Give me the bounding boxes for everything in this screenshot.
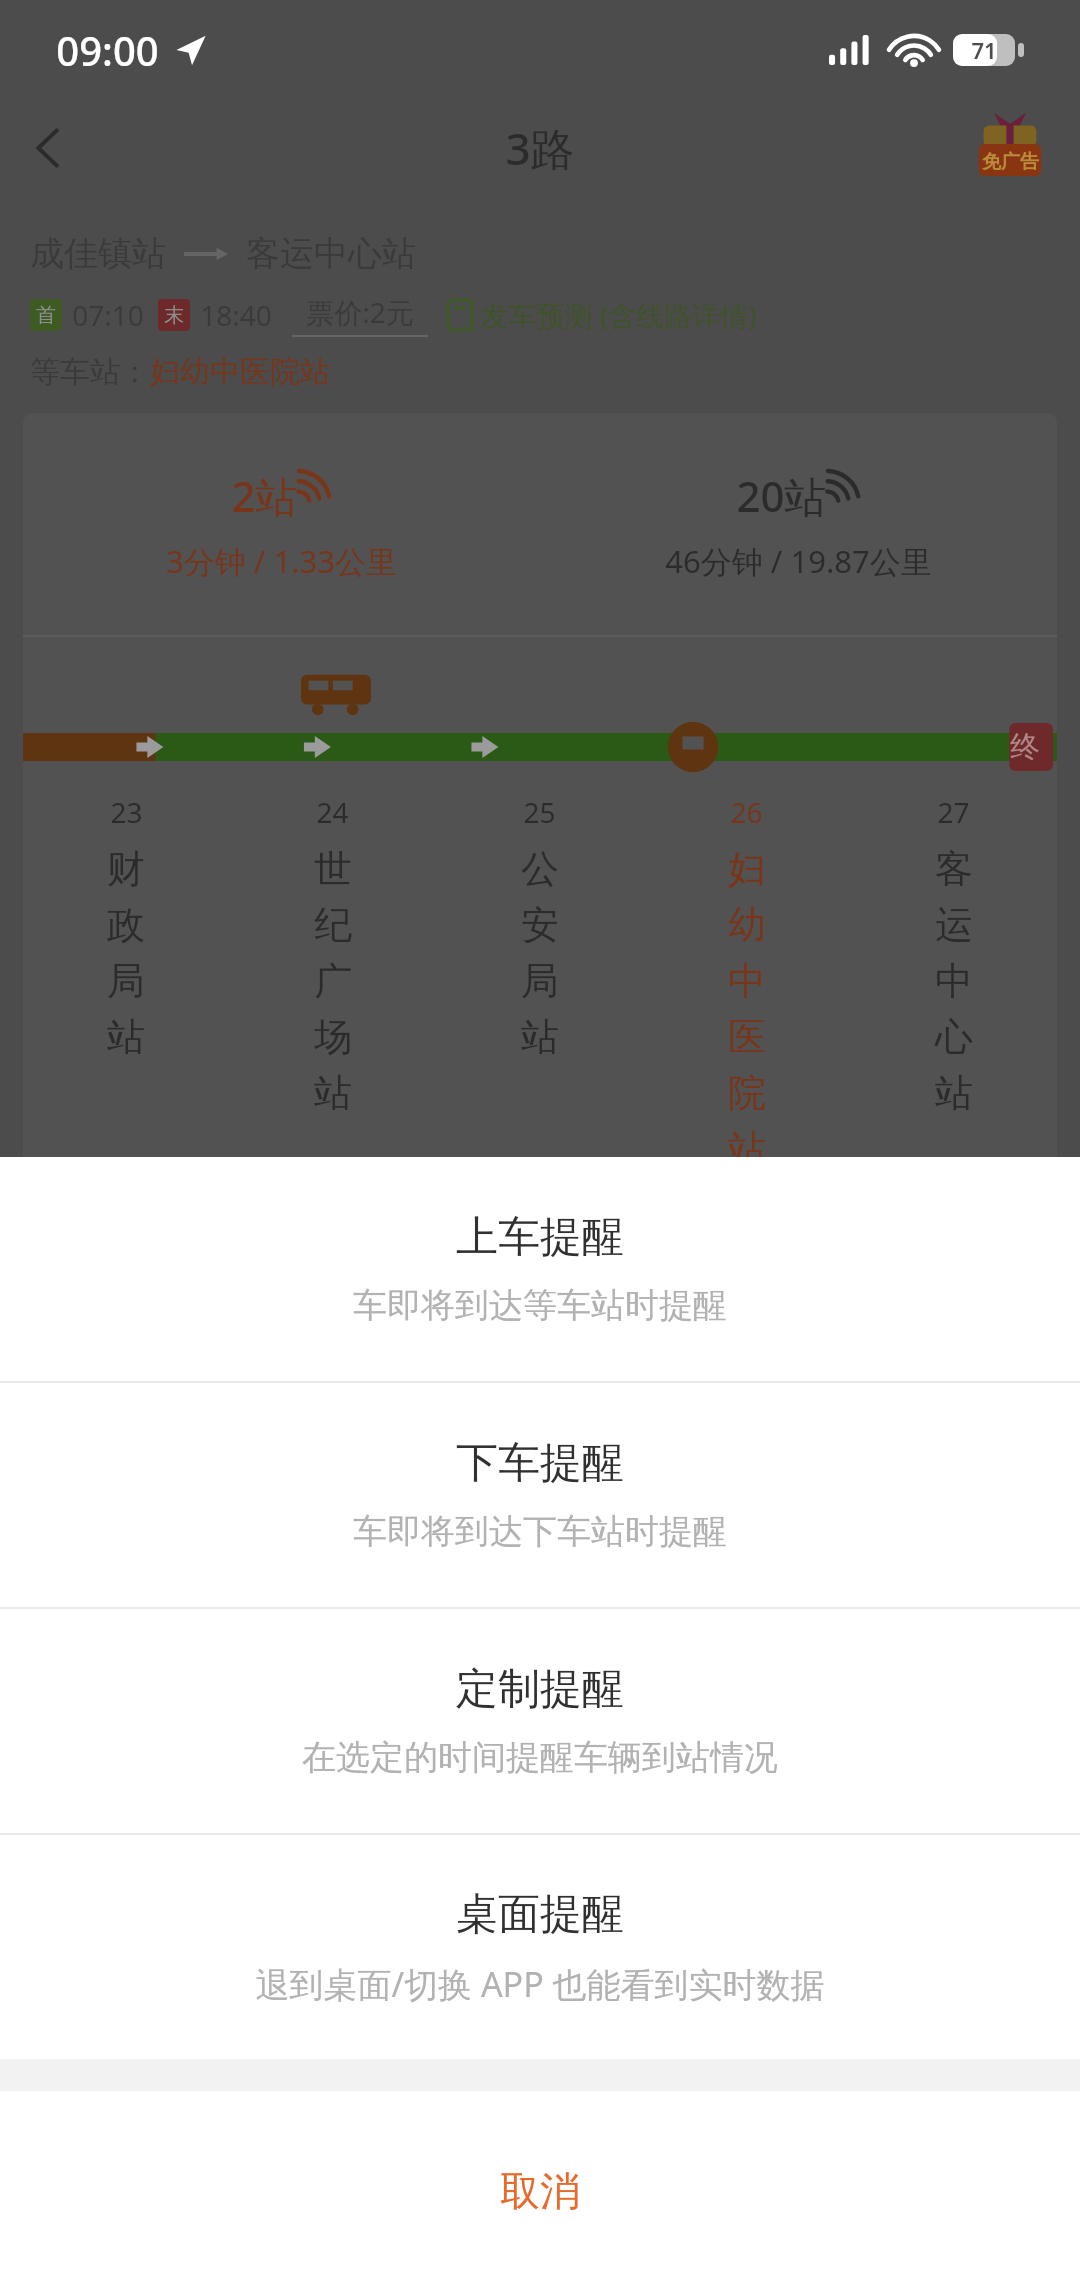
staticText: 心 [935, 1013, 973, 1061]
staticText: 末 [164, 303, 184, 328]
staticText: 发车预测 (含线路详情) [480, 296, 757, 334]
staticText: 退到桌面/切换 APP 也能看到实时数据 [255, 1961, 825, 2007]
staticText: 24 [316, 793, 349, 831]
staticText: 首 [36, 303, 56, 328]
staticText: 桌面提醒 [456, 1888, 624, 1941]
staticText: 幼 [728, 901, 766, 949]
staticText: 世 [314, 845, 352, 893]
staticText: 客 [935, 845, 973, 893]
staticText: 车即将到达等车站时提醒 [353, 1284, 727, 1327]
button[interactable]: Back [0, 100, 96, 196]
button[interactable]: 2站 [23, 413, 540, 635]
staticText: 3路 [505, 118, 575, 178]
button[interactable]: 下车提醒 [0, 1383, 1080, 1607]
staticText: 18:40 [200, 296, 272, 334]
staticText: 妇幼中医院站 [150, 353, 330, 391]
button[interactable]: 20站 [540, 413, 1057, 635]
button[interactable]: 25 [436, 793, 643, 1069]
staticText: 定制提醒 [456, 1663, 624, 1716]
staticText: 票价:2元 [306, 293, 414, 331]
button[interactable]: 取消 [0, 2091, 1080, 2291]
staticText: 下车提醒 [456, 1437, 624, 1490]
button[interactable]: 上车提醒 [0, 1157, 1080, 1381]
button[interactable]: 桌面提醒 [0, 1835, 1080, 2059]
staticText: 车即将到达下车站时提醒 [353, 1510, 727, 1553]
staticText: 等车站： [30, 353, 150, 391]
staticText: 政 [107, 901, 145, 949]
staticText: 局 [521, 957, 559, 1005]
button[interactable]: 26 [643, 793, 850, 1181]
staticText: 20站 [736, 467, 827, 524]
staticText: 免广告 [982, 150, 1039, 174]
staticText: 中 [728, 957, 766, 1005]
staticText: 运 [935, 901, 973, 949]
staticText: 07:10 [72, 296, 144, 334]
staticText: 站 [314, 1069, 352, 1117]
button[interactable]: Remove ads [968, 106, 1052, 190]
button[interactable]: 23 [23, 793, 229, 1069]
staticText: 院 [728, 1069, 766, 1117]
staticText: 2站 [231, 467, 298, 524]
staticText: 46分钟 / 19.87公里 [665, 540, 932, 582]
staticText: 在选定的时间提醒车辆到站情况 [302, 1736, 778, 1779]
staticText: 站 [107, 1013, 145, 1061]
staticText: 上车提醒 [456, 1211, 624, 1264]
staticText: 财 [107, 845, 145, 893]
staticText: 终 [1010, 728, 1040, 766]
staticText: 中 [935, 957, 973, 1005]
staticText: 站 [935, 1069, 973, 1117]
staticText: 3分钟 / 1.33公里 [166, 540, 397, 582]
staticText: 站 [521, 1013, 559, 1061]
staticText: 站 [728, 1125, 766, 1173]
staticText: 纪 [314, 901, 352, 949]
staticText: 客运中心站 [246, 232, 416, 275]
staticText: 局 [107, 957, 145, 1005]
staticText: 广 [314, 957, 352, 1005]
staticText: 09:00 [56, 23, 159, 77]
button[interactable]: 24 [229, 793, 436, 1125]
staticText: 公 [521, 845, 559, 893]
staticText: 25 [523, 793, 556, 831]
staticText: 成佳镇站 [30, 232, 166, 275]
button[interactable]: 定制提醒 [0, 1609, 1080, 1833]
staticText: 27 [937, 793, 970, 831]
staticText: 26 [730, 793, 763, 831]
button[interactable]: 27 [850, 793, 1057, 1125]
button[interactable]: 发车预测 (含线路详情) [448, 296, 757, 334]
staticText: 安 [521, 901, 559, 949]
staticText: 23 [110, 793, 143, 831]
staticText: 71 [971, 35, 997, 65]
staticText: 取消 [500, 2166, 580, 2216]
staticText: 场 [314, 1013, 352, 1061]
staticText: 医 [728, 1013, 766, 1061]
staticText: 妇 [728, 845, 766, 893]
